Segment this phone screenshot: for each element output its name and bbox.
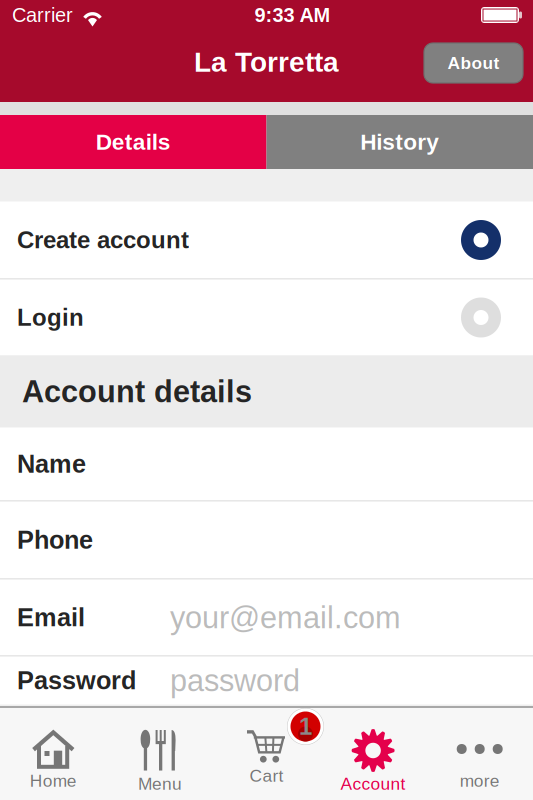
staticText: Name <box>17 450 86 478</box>
staticText: Account <box>341 774 406 793</box>
staticText: Carrier <box>12 4 73 26</box>
staticText: Login <box>17 304 84 331</box>
button[interactable]: About <box>424 43 523 83</box>
button[interactable]: History <box>266 115 533 169</box>
staticText: Home <box>30 771 77 790</box>
staticText: Password <box>17 666 136 695</box>
staticText: 1 <box>299 713 312 740</box>
staticText: password <box>170 663 300 698</box>
button[interactable]: Menu <box>107 708 213 800</box>
staticText: 9:33 AM <box>254 4 330 26</box>
staticText: Phone <box>17 526 93 554</box>
button[interactable]: more <box>426 708 533 800</box>
staticText: Details <box>96 129 171 155</box>
staticText: La Torretta <box>194 46 339 78</box>
staticText: your@email.com <box>170 600 401 635</box>
button[interactable]: Create account <box>0 201 533 278</box>
button[interactable]: Cart <box>213 708 320 800</box>
staticText: About <box>447 53 499 73</box>
staticText: Menu <box>138 774 182 793</box>
staticText: Account details <box>22 374 252 409</box>
button[interactable]: Home <box>0 708 107 800</box>
button[interactable]: Details <box>0 115 266 169</box>
staticText: History <box>360 129 439 155</box>
staticText: more <box>460 771 500 790</box>
staticText: Cart <box>249 766 283 785</box>
staticText: Email <box>17 603 85 632</box>
staticText: Create account <box>17 227 189 253</box>
button[interactable]: Login <box>0 279 533 355</box>
button[interactable]: Account <box>320 708 426 800</box>
